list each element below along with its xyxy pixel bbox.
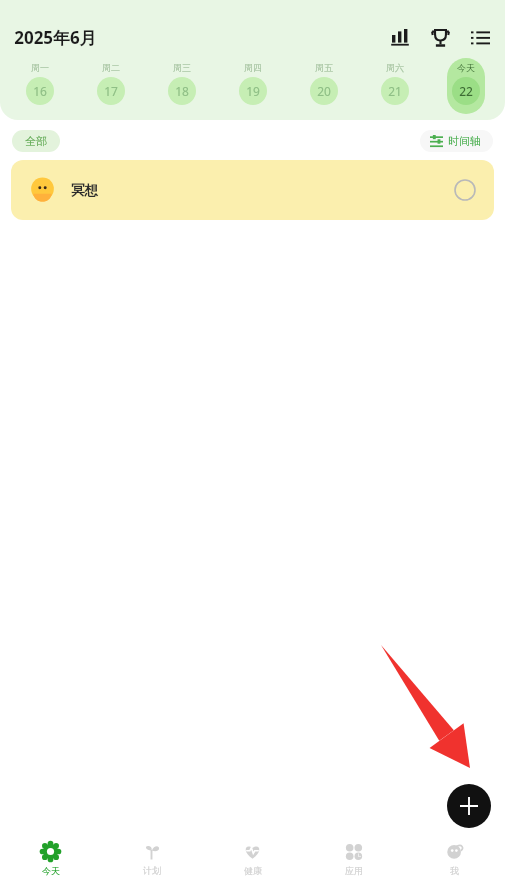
button[interactable]: 周四	[217, 58, 288, 114]
button[interactable]: List view	[467, 24, 493, 50]
staticText: 16	[33, 83, 47, 99]
staticText: 20	[317, 83, 331, 99]
staticText: 17	[104, 83, 118, 99]
staticText: 应用	[345, 865, 363, 876]
staticText: 周四	[244, 62, 262, 73]
staticText: 冥想	[71, 182, 98, 199]
button[interactable]: 全部	[12, 130, 60, 152]
staticText: 19	[246, 83, 260, 99]
button[interactable]: Add	[447, 784, 491, 828]
button[interactable]: 时间轴	[420, 130, 493, 152]
staticText: 今天	[457, 62, 475, 73]
button[interactable]: Achievements	[427, 24, 453, 50]
button[interactable]: 应用	[303, 832, 404, 884]
button[interactable]: 今天	[430, 58, 501, 114]
staticText: 18	[175, 83, 189, 99]
button[interactable]: 冥想	[11, 160, 494, 220]
staticText: 周二	[102, 62, 120, 73]
staticText: 22	[459, 83, 473, 99]
button[interactable]: 周六	[359, 58, 430, 114]
button[interactable]: 健康	[202, 832, 303, 884]
button[interactable]: 周二	[75, 58, 146, 114]
staticText: 计划	[143, 865, 161, 876]
button[interactable]: 周五	[288, 58, 359, 114]
staticText: 周六	[386, 62, 404, 73]
staticText: 健康	[244, 865, 262, 876]
staticText: 时间轴	[448, 134, 481, 148]
button[interactable]: 今天	[0, 832, 101, 884]
staticText: 周五	[315, 62, 333, 73]
button[interactable]: Complete task	[454, 179, 476, 201]
button[interactable]: 我	[404, 832, 505, 884]
staticText: 2025年6月	[14, 26, 97, 49]
staticText: 今天	[42, 865, 60, 876]
button[interactable]: 周三	[146, 58, 217, 114]
button[interactable]: 周一	[4, 58, 75, 114]
staticText: 周一	[31, 62, 49, 73]
staticText: 全部	[25, 134, 47, 148]
button[interactable]: Statistics	[387, 24, 413, 50]
staticText: 周三	[173, 62, 191, 73]
staticText: 我	[450, 865, 459, 876]
button[interactable]: 计划	[101, 832, 202, 884]
staticText: 21	[388, 83, 402, 99]
